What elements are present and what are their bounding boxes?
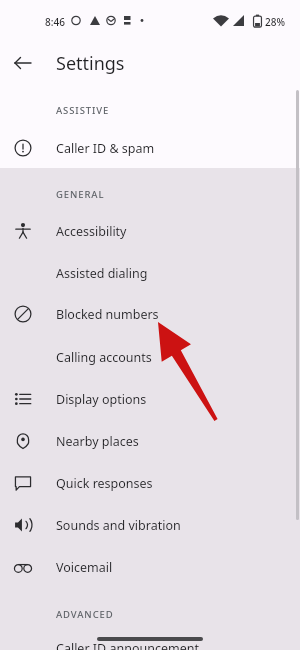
staticText: Voicemail	[56, 559, 113, 576]
button[interactable]: Nearby places	[0, 420, 300, 650]
button[interactable]: Back	[6, 46, 40, 80]
staticText: Display options	[56, 391, 147, 408]
staticText: 28%	[265, 15, 285, 29]
staticText: Accessibility	[56, 223, 127, 240]
staticText: Caller ID announcement	[56, 640, 199, 650]
staticText: Calling accounts	[56, 349, 152, 366]
staticText: Blocked numbers	[56, 306, 159, 323]
staticText: ASSISTIVE	[56, 104, 110, 117]
button[interactable]: Assisted dialing	[0, 252, 300, 650]
staticText: Settings	[56, 51, 125, 76]
button[interactable]: Accessibility	[0, 210, 300, 650]
staticText: ADVANCED	[56, 608, 114, 621]
button[interactable]: Caller ID & spam	[0, 127, 300, 650]
button[interactable]: Sounds and vibration	[0, 504, 300, 650]
staticText: Nearby places	[56, 433, 139, 450]
staticText: 8:46	[45, 15, 65, 29]
staticText: Assisted dialing	[56, 265, 148, 282]
staticText: Quick responses	[56, 475, 153, 492]
button[interactable]: Calling accounts	[0, 336, 300, 650]
button[interactable]: Blocked numbers	[0, 293, 300, 650]
staticText: GENERAL	[56, 188, 105, 201]
button[interactable]: Voicemail	[0, 546, 300, 650]
staticText: Sounds and vibration	[56, 517, 181, 534]
staticText: Caller ID & spam	[56, 140, 155, 157]
button[interactable]: Caller ID announcement	[0, 627, 300, 650]
button[interactable]: Quick responses	[0, 462, 300, 650]
button[interactable]: Display options	[0, 378, 300, 650]
